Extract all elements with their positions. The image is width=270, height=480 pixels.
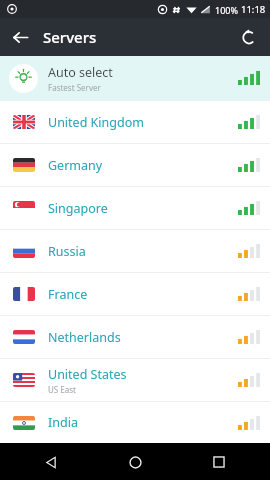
staticText: Auto select — [48, 64, 113, 81]
staticText: France — [48, 286, 88, 303]
button[interactable]: Germany — [0, 144, 270, 186]
button[interactable]: Recent apps — [204, 447, 234, 477]
staticText: United Kingdom — [48, 114, 144, 131]
button[interactable]: Refresh — [233, 21, 265, 53]
button[interactable]: Home — [120, 447, 150, 477]
staticText: 100% — [215, 4, 238, 16]
button[interactable]: Back — [36, 447, 66, 477]
button[interactable]: Back — [4, 21, 36, 53]
button[interactable]: Auto select — [0, 56, 270, 100]
button[interactable]: United States — [0, 359, 270, 401]
staticText: Fastest Server — [48, 82, 101, 93]
staticText: Russia — [48, 243, 86, 260]
button[interactable]: India — [0, 402, 270, 443]
staticText: 11:18 — [241, 3, 266, 16]
button[interactable]: Russia — [0, 230, 270, 272]
staticText: Netherlands — [48, 329, 121, 346]
button[interactable]: United Kingdom — [0, 101, 270, 143]
staticText: India — [48, 414, 78, 431]
staticText: Singapore — [48, 200, 108, 217]
button[interactable]: Singapore — [0, 187, 270, 229]
staticText: Germany — [48, 157, 103, 174]
staticText: United States — [48, 366, 127, 383]
staticText: US East — [48, 384, 76, 395]
button[interactable]: France — [0, 273, 270, 315]
button[interactable]: Netherlands — [0, 316, 270, 358]
staticText: Servers — [43, 27, 97, 47]
